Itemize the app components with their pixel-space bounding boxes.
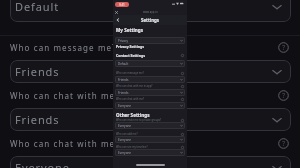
button[interactable]: Back [116, 18, 120, 22]
staticText: Friends [15, 64, 60, 79]
button[interactable]: Help [181, 72, 184, 75]
staticText: Everyone [118, 124, 132, 128]
staticText: Friends [15, 112, 60, 127]
staticText: www.app.co [143, 10, 158, 14]
staticText: Who can message me? [116, 71, 144, 75]
staticText: ? [282, 139, 286, 149]
button[interactable]: Friends [115, 89, 185, 96]
staticText: My Settings [116, 27, 143, 33]
staticText: Contact Settings [116, 53, 145, 58]
button[interactable]: Close [115, 11, 118, 14]
staticText: Who can chat with me? [10, 90, 120, 101]
button[interactable]: Everyone [115, 136, 185, 143]
staticText: Who can message me? [10, 42, 117, 53]
staticText: Who can invite me to private groups? [116, 118, 162, 122]
staticText: Who can chat with me in app? [116, 84, 153, 88]
button[interactable]: Everyone [115, 149, 185, 156]
button[interactable]: Help [181, 54, 184, 57]
staticText: Who can chat with me? [116, 97, 145, 101]
staticText: Who can chat with me? [10, 138, 120, 149]
button[interactable]: Friends [10, 60, 291, 83]
staticText: Privacy Settings [116, 44, 144, 49]
staticText: Friends [118, 91, 129, 95]
staticText: Friends [118, 78, 129, 82]
staticText: 9:41 [119, 3, 125, 7]
button[interactable]: Everyone [115, 122, 185, 129]
button[interactable]: Friends [10, 108, 291, 131]
button[interactable]: Help [181, 133, 184, 136]
staticText: Everyone [118, 104, 132, 108]
button[interactable]: Friends [115, 76, 185, 83]
staticText: ? [282, 91, 286, 101]
button[interactable]: Help [181, 119, 184, 122]
staticText: Default [15, 0, 60, 14]
button[interactable]: Help [181, 98, 184, 101]
button[interactable]: Help [278, 90, 289, 101]
staticText: Who can see my timeline? [116, 145, 148, 149]
staticText: Settings [141, 17, 159, 23]
staticText: Everyone [118, 151, 132, 155]
staticText: ? [282, 43, 286, 53]
button[interactable]: Help [181, 85, 184, 88]
staticText: Everyone [15, 160, 70, 168]
button[interactable]: Everyone [10, 156, 291, 168]
button[interactable]: Privacy [115, 37, 185, 44]
button[interactable]: Everyone [115, 102, 185, 109]
button[interactable]: Help [181, 146, 184, 149]
button[interactable]: Default [10, 0, 291, 22]
staticText: Who can add me? [116, 132, 138, 136]
staticText: Privacy [118, 39, 129, 43]
staticText: Default [118, 62, 129, 66]
staticText: Other Settings [116, 112, 150, 118]
button[interactable]: Default [115, 60, 185, 67]
staticText: Everyone [118, 138, 132, 142]
button[interactable]: Help [278, 138, 289, 149]
button[interactable]: Help [278, 42, 289, 53]
